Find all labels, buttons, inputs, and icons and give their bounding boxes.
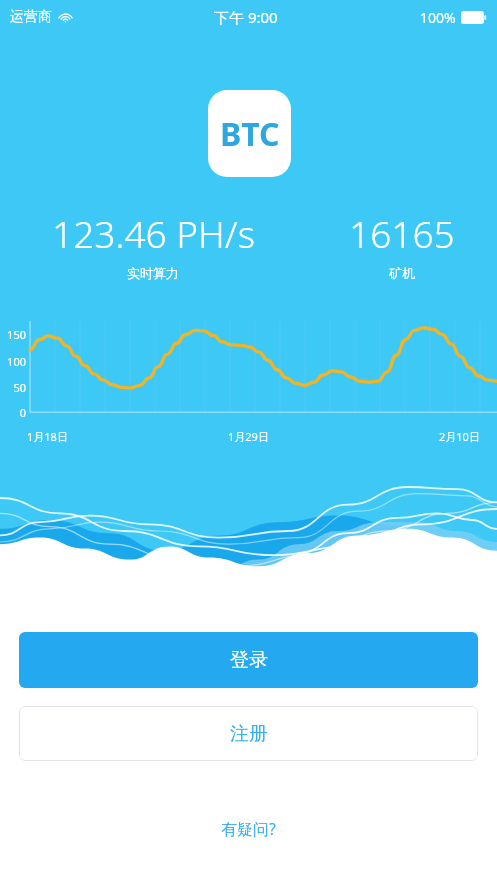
staticText: 2月10日 bbox=[439, 429, 480, 444]
staticText: 0 bbox=[19, 405, 26, 420]
staticText: 16165 bbox=[349, 208, 455, 258]
staticText: 100 bbox=[7, 354, 26, 369]
staticText: 下午 9:00 bbox=[214, 7, 278, 27]
staticText: 50 bbox=[13, 380, 26, 395]
staticText: 登录 bbox=[230, 648, 268, 672]
staticText: 1月18日 bbox=[27, 429, 68, 444]
staticText: BTC bbox=[220, 112, 280, 156]
staticText: 有疑问? bbox=[221, 818, 276, 840]
staticText: 1月29日 bbox=[228, 429, 269, 444]
button[interactable]: 登录 bbox=[19, 632, 478, 688]
staticText: 运营商 bbox=[10, 8, 52, 26]
button[interactable]: 有疑问? bbox=[221, 818, 276, 840]
staticText: 100% bbox=[420, 8, 456, 27]
staticText: 实时算力 bbox=[127, 265, 179, 281]
staticText: 矿机 bbox=[389, 265, 415, 281]
button[interactable]: 注册 bbox=[19, 706, 478, 761]
staticText: 注册 bbox=[230, 722, 268, 746]
staticText: 150 bbox=[7, 327, 26, 342]
staticText: 123.46 PH/s bbox=[52, 208, 255, 258]
